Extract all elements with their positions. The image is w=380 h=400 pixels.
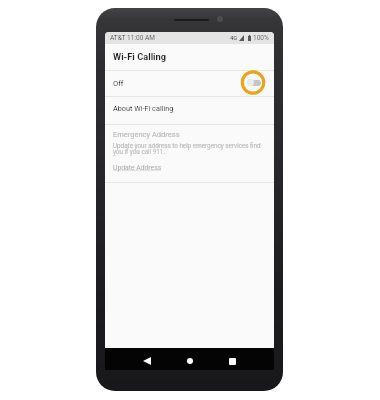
button[interactable]: Off: [105, 71, 274, 96]
button[interactable]: Back: [138, 352, 156, 370]
staticText: AT&T 11:00 AM: [110, 34, 155, 42]
staticText: About Wi-Fi calling: [113, 104, 174, 113]
staticText: Update Address: [113, 164, 162, 172]
staticText: 4G: [230, 35, 238, 42]
button[interactable]: About Wi-Fi calling: [105, 97, 274, 124]
button[interactable]: Recent apps: [223, 352, 241, 370]
button[interactable]: Update Address: [113, 164, 162, 172]
staticText: Off: [113, 79, 124, 88]
staticText: Emergency Address: [113, 130, 180, 139]
button[interactable]: Wi-Fi Calling toggle, Off: [240, 70, 266, 95]
button[interactable]: Home: [181, 352, 199, 370]
staticText: Update your address to help emergency se…: [113, 142, 268, 156]
staticText: Wi-Fi Calling: [113, 51, 167, 62]
staticText: 100%: [253, 34, 269, 42]
